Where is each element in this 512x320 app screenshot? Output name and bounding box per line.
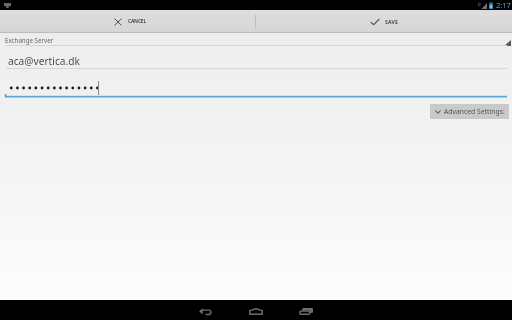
staticText: SAVE [385, 18, 398, 25]
staticText: aca@vertica.dk [8, 54, 80, 68]
button[interactable]: Back [181, 301, 231, 320]
staticText: Advanced Settings: [444, 107, 505, 116]
staticText: CANCEL [128, 18, 146, 25]
button[interactable]: SAVE [256, 10, 512, 33]
staticText: 2:17 [496, 0, 511, 10]
button[interactable]: Advanced Settings: [430, 104, 509, 119]
staticText: Exchange Server [5, 36, 54, 44]
button[interactable]: Recent apps [281, 301, 331, 320]
button[interactable]: Home [231, 301, 281, 320]
button[interactable]: CANCEL [0, 10, 255, 33]
